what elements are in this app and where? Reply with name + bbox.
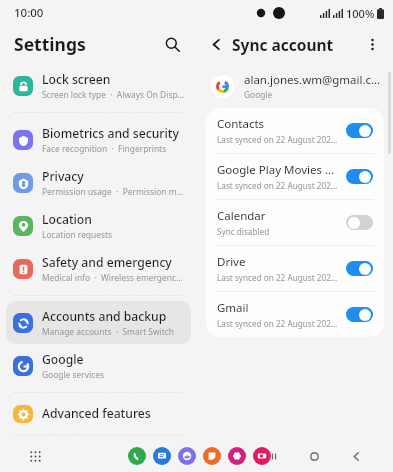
staticText: Last synced on 22 August 2022, 10:00 [217,318,340,329]
button[interactable]: Safety and emergency [6,247,191,290]
staticText: Gmail [217,300,249,316]
button[interactable]: Internet [178,447,196,465]
button[interactable]: alan.jones.wm@gmail.com [197,68,393,108]
button[interactable]: Biometrics and security [6,118,191,161]
button[interactable]: More options [359,31,385,57]
staticText: Permission usage · Permission manager [42,186,185,197]
button[interactable]: Advanced features [6,398,191,430]
staticText: 100% [346,6,375,21]
staticText: Manage accounts · Smart Switch [42,326,174,337]
button[interactable]: Drive [206,246,384,291]
staticText: Screen lock type · Always On Display [42,89,185,100]
staticText: alan.jones.wm@gmail.com [244,72,381,88]
button[interactable]: On [346,169,373,184]
button[interactable]: On [346,307,373,322]
staticText: Google [244,89,273,100]
button[interactable]: Navigate up [203,31,229,57]
button[interactable]: On [346,123,373,138]
button[interactable]: Calendar [206,200,384,245]
button[interactable]: Gmail [206,292,384,337]
button[interactable]: Gallery [228,447,246,465]
staticText: Sync account [232,34,334,55]
button[interactable]: Privacy [6,161,191,204]
staticText: Google [42,351,84,368]
staticText: Sync disabled [217,226,270,237]
button[interactable]: Lock screen [6,64,191,107]
button[interactable]: Messages [153,447,171,465]
button[interactable]: Google [6,344,191,387]
staticText: Accounts and backup [42,308,167,325]
button[interactable]: All apps [23,444,47,468]
staticText: Last synced on 22 August 2022, 10:00 [217,272,340,283]
staticText: Google services [42,369,104,380]
button[interactable]: Off [346,215,373,230]
staticText: Medical info · Wireless emergency alerts [42,272,185,283]
staticText: Last synced on 22 August 2022, 10:00 [217,180,340,191]
staticText: Calendar [217,208,266,224]
staticText: Contacts [217,116,265,132]
staticText: Drive [217,254,246,270]
button[interactable]: Home [303,445,325,467]
staticText: Location [42,211,92,228]
staticText: Settings [14,32,86,56]
button[interactable]: Phone [128,447,146,465]
staticText: Last synced on 22 August 2022, 10:00 [217,134,340,145]
button[interactable]: Recent apps [261,445,283,467]
button[interactable]: Accounts and backup [6,301,191,344]
button[interactable]: Camera [253,447,271,465]
staticText: Safety and emergency [42,254,172,271]
button[interactable]: Samsung Notes [203,447,221,465]
staticText: Privacy [42,168,84,185]
staticText: Google Play Movies & TV [217,162,340,178]
button[interactable]: Search settings [157,29,187,59]
button[interactable]: On [346,261,373,276]
staticText: Lock screen [42,71,111,88]
staticText: Advanced features [42,405,151,422]
button[interactable]: Contacts [206,108,384,153]
button[interactable]: Location [6,204,191,247]
staticText: Biometrics and security [42,125,179,142]
button[interactable]: Back [345,445,367,467]
staticText: Location requests [42,229,113,240]
staticText: Face recognition · Fingerprints [42,143,167,154]
staticText: 10:00 [14,5,44,21]
button[interactable]: Google Play Movies & TV [206,154,384,199]
